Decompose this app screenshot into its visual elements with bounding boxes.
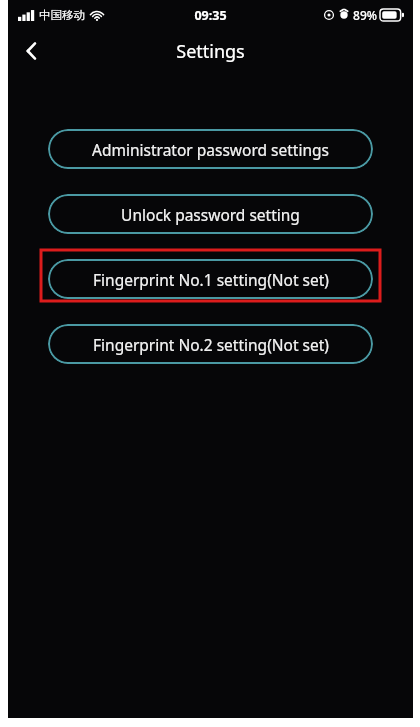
- button[interactable]: Fingerprint No.1 setting(Not set): [48, 259, 373, 299]
- button[interactable]: Fingerprint No.2 setting(Not set): [48, 324, 373, 364]
- button[interactable]: Back: [8, 30, 54, 72]
- button[interactable]: Unlock password setting: [48, 194, 373, 234]
- staticText: 中国移动: [39, 8, 85, 22]
- staticText: Fingerprint No.1 setting(Not set): [93, 269, 329, 290]
- button[interactable]: Administrator password settings: [48, 129, 373, 169]
- staticText: 89%: [353, 7, 377, 23]
- staticText: Settings: [176, 39, 245, 64]
- staticText: Administrator password settings: [92, 139, 329, 160]
- staticText: 09:35: [194, 7, 227, 24]
- staticText: Unlock password setting: [121, 204, 300, 225]
- staticText: Fingerprint No.2 setting(Not set): [93, 334, 329, 355]
